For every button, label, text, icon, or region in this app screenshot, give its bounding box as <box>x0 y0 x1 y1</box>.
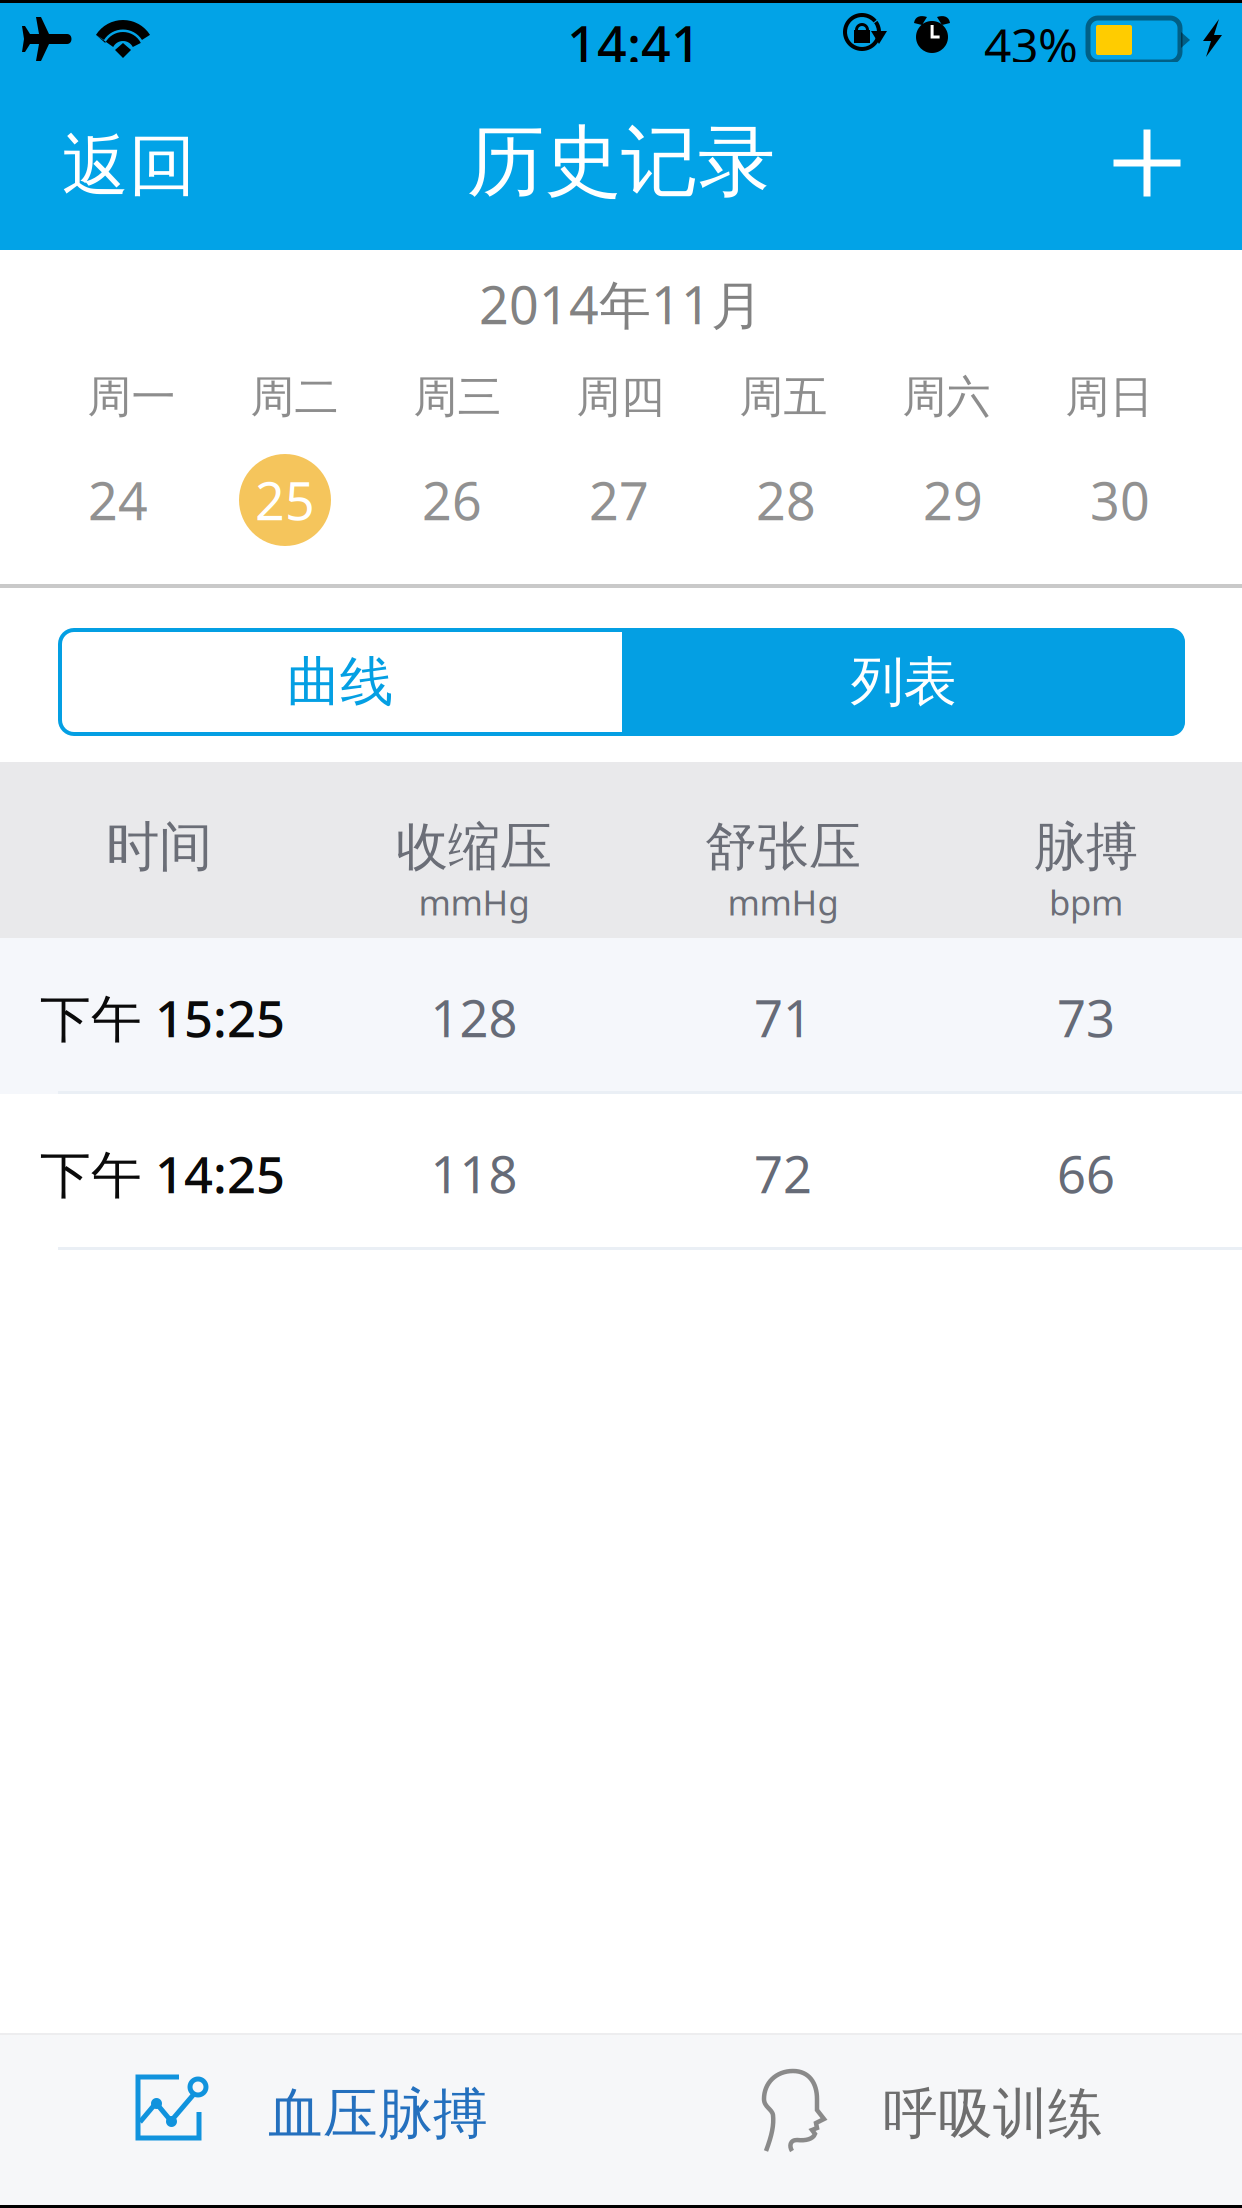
button[interactable]: 列表 <box>622 628 1185 736</box>
staticText: 71 <box>754 984 812 1051</box>
staticText: 14:41 <box>567 9 701 79</box>
staticText: 血压脉搏 <box>268 2080 488 2147</box>
button[interactable]: 血压脉搏 <box>0 2035 621 2202</box>
staticText: 24 <box>88 465 148 535</box>
staticText: 周四 <box>576 370 664 424</box>
staticText: 收缩压 <box>396 815 552 879</box>
staticText: 周三 <box>413 370 501 424</box>
staticText: 128 <box>430 984 517 1051</box>
staticText: mmHg <box>727 879 838 925</box>
staticText: 周六 <box>902 370 990 424</box>
staticText: 呼吸训练 <box>883 2080 1103 2147</box>
staticText: 历史记录 <box>467 114 775 209</box>
staticText: bpm <box>1049 879 1123 925</box>
button[interactable]: 26 <box>368 450 535 550</box>
staticText: 28 <box>756 465 816 535</box>
button[interactable]: 呼吸训练 <box>621 2035 1242 2202</box>
staticText: 时间 <box>106 814 212 880</box>
staticText: 周五 <box>739 370 827 424</box>
button[interactable]: 曲线 <box>58 628 622 736</box>
button[interactable]: Add <box>1071 69 1223 257</box>
staticText: 118 <box>430 1140 517 1207</box>
staticText: 脉搏 <box>1034 815 1138 879</box>
staticText: 下午 15:25 <box>40 984 285 1051</box>
staticText: 43% <box>984 13 1078 77</box>
button[interactable]: 29 <box>869 450 1036 550</box>
staticText: 周二 <box>250 370 338 424</box>
button[interactable]: 下午 14:25 <box>0 1094 1242 1250</box>
staticText: 29 <box>923 465 983 535</box>
staticText: 舒张压 <box>705 815 861 879</box>
staticText: 72 <box>754 1140 812 1207</box>
staticText: 周一 <box>87 370 175 424</box>
button[interactable]: 返回 <box>0 72 252 260</box>
button[interactable]: 28 <box>702 450 869 550</box>
staticText: 66 <box>1057 1140 1115 1207</box>
staticText: 2014年11月 <box>479 269 763 339</box>
staticText: 曲线 <box>287 649 393 715</box>
staticText: 26 <box>422 465 482 535</box>
staticText: 返回 <box>62 125 196 207</box>
staticText: mmHg <box>418 879 529 925</box>
staticText: 73 <box>1057 984 1115 1051</box>
button[interactable]: 25 <box>201 450 368 550</box>
staticText: 25 <box>255 465 315 535</box>
button[interactable]: 30 <box>1036 450 1203 550</box>
staticText: 下午 14:25 <box>40 1140 285 1207</box>
staticText: 列表 <box>850 649 956 715</box>
staticText: 30 <box>1090 465 1150 535</box>
button[interactable]: 下午 15:25 <box>0 938 1242 1094</box>
staticText: 周日 <box>1065 370 1153 424</box>
button[interactable]: 27 <box>535 450 702 550</box>
staticText: 27 <box>589 465 649 535</box>
button[interactable]: 24 <box>34 450 201 550</box>
